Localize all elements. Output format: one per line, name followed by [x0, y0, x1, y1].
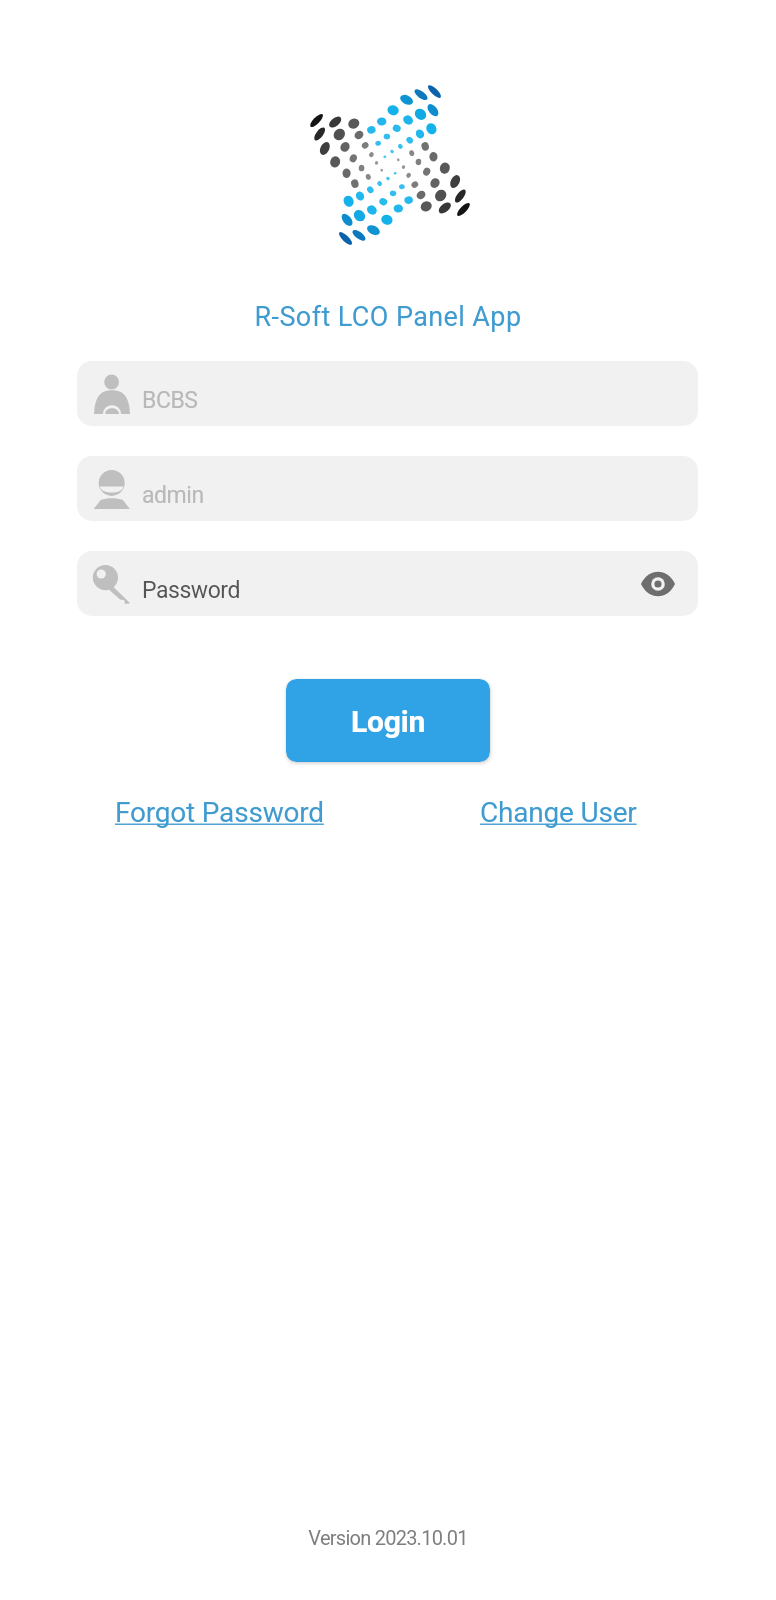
button[interactable]: Show password	[630, 556, 686, 612]
staticText: BCBS	[142, 387, 198, 414]
staticText: Password	[142, 577, 240, 604]
staticText: Version 2023.10.01	[0, 1526, 776, 1549]
button[interactable]: Password	[77, 551, 698, 616]
staticText: R-Soft LCO Panel App	[0, 301, 776, 333]
staticText: Login	[351, 704, 426, 739]
staticText: Forgot Password	[115, 796, 324, 829]
staticText: admin	[142, 482, 204, 509]
button[interactable]: Change User	[480, 796, 637, 829]
button[interactable]: Forgot Password	[115, 796, 324, 829]
button[interactable]: BCBS	[77, 361, 698, 426]
other: R-Soft logo	[300, 75, 480, 255]
button[interactable]: admin	[77, 456, 698, 521]
staticText: Change User	[480, 796, 637, 829]
button[interactable]: Login	[286, 679, 490, 762]
